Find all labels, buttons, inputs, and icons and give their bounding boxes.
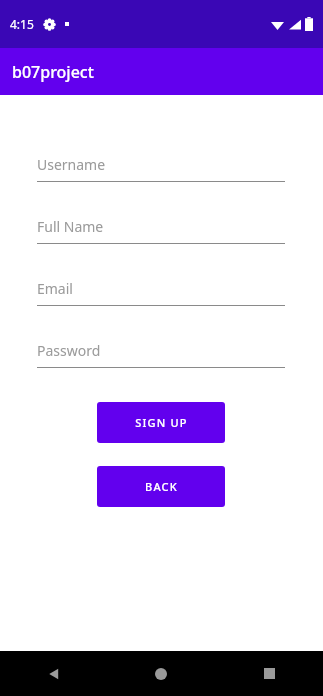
button[interactable]: Email	[37, 279, 285, 306]
button[interactable]: Full Name	[37, 217, 285, 244]
staticText: 4:15	[10, 16, 34, 32]
staticText: Email	[37, 279, 73, 298]
staticText: b07project	[12, 61, 94, 83]
button[interactable]: BACK	[97, 466, 225, 507]
staticText: SIGN UP	[135, 415, 188, 430]
staticText: BACK	[145, 479, 178, 494]
staticText: Full Name	[37, 217, 104, 236]
button[interactable]: Recent apps	[215, 651, 323, 696]
button[interactable]: Username	[37, 155, 285, 182]
button[interactable]: SIGN UP	[97, 402, 225, 443]
button[interactable]: Password	[37, 341, 285, 368]
button[interactable]: Home	[107, 651, 215, 696]
staticText: Username	[37, 155, 106, 174]
button[interactable]: Back	[0, 651, 107, 696]
staticText: Password	[37, 341, 101, 360]
